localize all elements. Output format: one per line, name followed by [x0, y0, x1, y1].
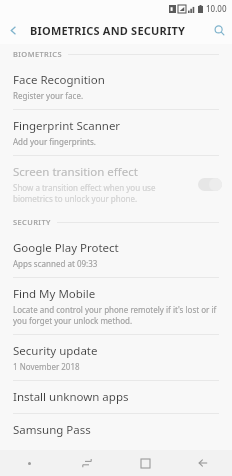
staticText: Add your fingerprints. [13, 136, 96, 147]
staticText: BIOMETRICS AND SECURITY [30, 23, 186, 38]
button[interactable]: Search [206, 17, 232, 43]
button[interactable]: Back [0, 17, 26, 43]
staticText: Screen transition effect [13, 164, 138, 180]
staticText: 10.00 [206, 3, 227, 14]
button[interactable]: Find My Mobile [0, 278, 232, 334]
staticText: 1 November 2018 [13, 361, 80, 372]
staticText: Face Recognition [13, 72, 105, 88]
button[interactable]: Security update [0, 335, 232, 380]
staticText: Register your face. [13, 90, 84, 101]
staticText: BIOMETRICS [13, 49, 62, 59]
staticText: Fingerprint Scanner [13, 118, 121, 134]
staticText: Google Play Protect [13, 240, 119, 256]
button[interactable]: Install unknown apps [0, 381, 232, 413]
staticText: Security update [13, 343, 98, 359]
button[interactable]: Samsung Pass [0, 414, 232, 450]
button[interactable]: Screen transition effect toggle [198, 178, 222, 191]
staticText: Apps scanned at 09:33 [13, 258, 98, 269]
staticText: SECURITY [13, 217, 51, 227]
button[interactable]: Screen transition effect [0, 156, 232, 212]
staticText: Samsung Pass [13, 422, 91, 438]
button[interactable]: Back [174, 450, 232, 476]
button[interactable]: Home [116, 450, 174, 476]
button[interactable]: Face Recognition [0, 64, 232, 109]
button[interactable]: Fingerprint Scanner [0, 110, 232, 155]
staticText: Install unknown apps [13, 389, 129, 405]
button[interactable]: Google Play Protect [0, 232, 232, 277]
staticText: Locate and control your phone remotely i… [13, 304, 217, 326]
staticText: Show a transition effect when you use bi… [13, 182, 156, 204]
staticText: Find My Mobile [13, 286, 96, 302]
button[interactable]: Recent apps [58, 450, 116, 476]
